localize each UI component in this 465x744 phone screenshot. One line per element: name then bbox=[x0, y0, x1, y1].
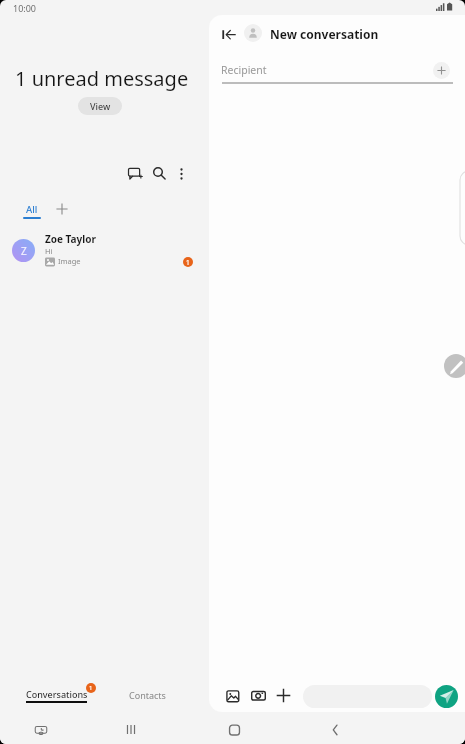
staticText: Z bbox=[21, 244, 27, 258]
staticText: View bbox=[90, 100, 111, 112]
button[interactable]: Home bbox=[227, 720, 243, 736]
button[interactable]: Camera bbox=[250, 687, 267, 704]
button[interactable]: Conversations bbox=[20, 684, 94, 707]
staticText: 1 bbox=[89, 684, 93, 692]
button[interactable]: Gallery bbox=[225, 688, 241, 704]
button[interactable]: Compose bbox=[444, 354, 465, 378]
staticText: Conversations bbox=[26, 688, 88, 700]
button[interactable]: All bbox=[17, 199, 47, 223]
staticText: All bbox=[26, 203, 38, 216]
button[interactable]: Send bbox=[435, 685, 458, 708]
staticText: Hi bbox=[45, 246, 53, 256]
button[interactable]: Z bbox=[0, 228, 209, 273]
staticText: Recipient bbox=[221, 63, 267, 77]
button[interactable]: View bbox=[78, 97, 122, 115]
button[interactable]: Add tab bbox=[54, 201, 70, 217]
button[interactable]: Back bbox=[328, 720, 344, 736]
button[interactable]: Add attachment bbox=[275, 687, 292, 704]
staticText: Contacts bbox=[129, 689, 166, 701]
staticText: 10:00 bbox=[13, 2, 37, 14]
staticText: Zoe Taylor bbox=[45, 232, 96, 246]
button[interactable]: Add recipient bbox=[433, 62, 450, 79]
button[interactable]: Recent apps bbox=[123, 720, 139, 736]
staticText: Image bbox=[58, 256, 81, 266]
button[interactable]: Contacts bbox=[123, 685, 172, 705]
staticText: New conversation bbox=[270, 26, 379, 42]
button[interactable]: Search bbox=[148, 161, 168, 181]
button[interactable]: Back bbox=[221, 26, 237, 42]
button[interactable]: Show keyboard bbox=[33, 721, 49, 737]
staticText: 1 unread message bbox=[15, 65, 189, 92]
button[interactable]: New message bbox=[125, 162, 144, 181]
staticText: 1 bbox=[186, 258, 190, 267]
button[interactable]: More options bbox=[172, 161, 192, 181]
button[interactable]: Contact profile bbox=[244, 24, 262, 42]
